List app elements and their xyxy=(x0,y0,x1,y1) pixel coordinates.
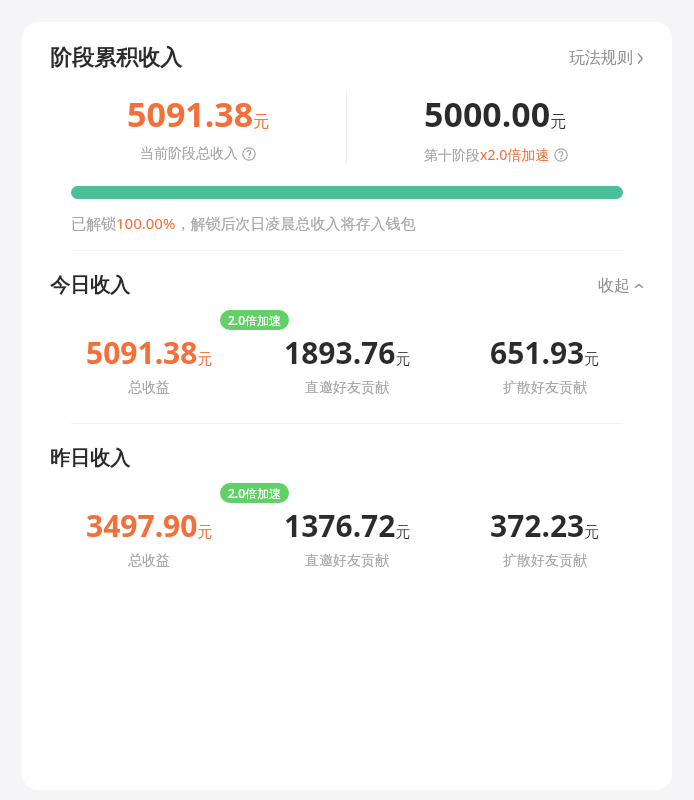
staticText: 直邀好友贡献 xyxy=(305,379,389,397)
staticText: 收起 xyxy=(598,276,630,296)
staticText: 1376.72元 xyxy=(284,505,411,546)
staticText: 总收益 xyxy=(128,379,170,397)
staticText: 已解锁100.00%，解锁后次日凌晨总收入将存入钱包 xyxy=(71,213,416,233)
staticText: 今日收入 xyxy=(50,273,130,298)
staticText: 3497.90元 xyxy=(86,505,213,546)
staticText: 1893.76元 xyxy=(284,332,411,373)
staticText: 阶段累积收入 xyxy=(50,44,182,72)
staticText: 2.0倍加速 xyxy=(228,485,281,501)
button[interactable]: 玩法规则 xyxy=(569,48,644,68)
staticText: 扩散好友贡献 xyxy=(503,379,587,397)
staticText: 直邀好友贡献 xyxy=(305,552,389,570)
staticText: 651.93元 xyxy=(490,332,600,373)
staticText: 昨日收入 xyxy=(50,446,130,471)
staticText: 第十阶段x2.0倍加速 xyxy=(424,145,550,164)
staticText: 5091.38元 xyxy=(127,91,270,137)
button[interactable]: 收起 xyxy=(598,276,644,296)
staticText: 玩法规则 xyxy=(569,48,633,68)
staticText: 5091.38元 xyxy=(86,332,213,373)
staticText: 372.23元 xyxy=(490,505,600,546)
staticText: 2.0倍加速 xyxy=(228,312,281,328)
staticText: 5000.00元 xyxy=(424,91,567,137)
staticText: 扩散好友贡献 xyxy=(503,552,587,570)
staticText: 当前阶段总收入 xyxy=(140,145,238,163)
staticText: 总收益 xyxy=(128,552,170,570)
